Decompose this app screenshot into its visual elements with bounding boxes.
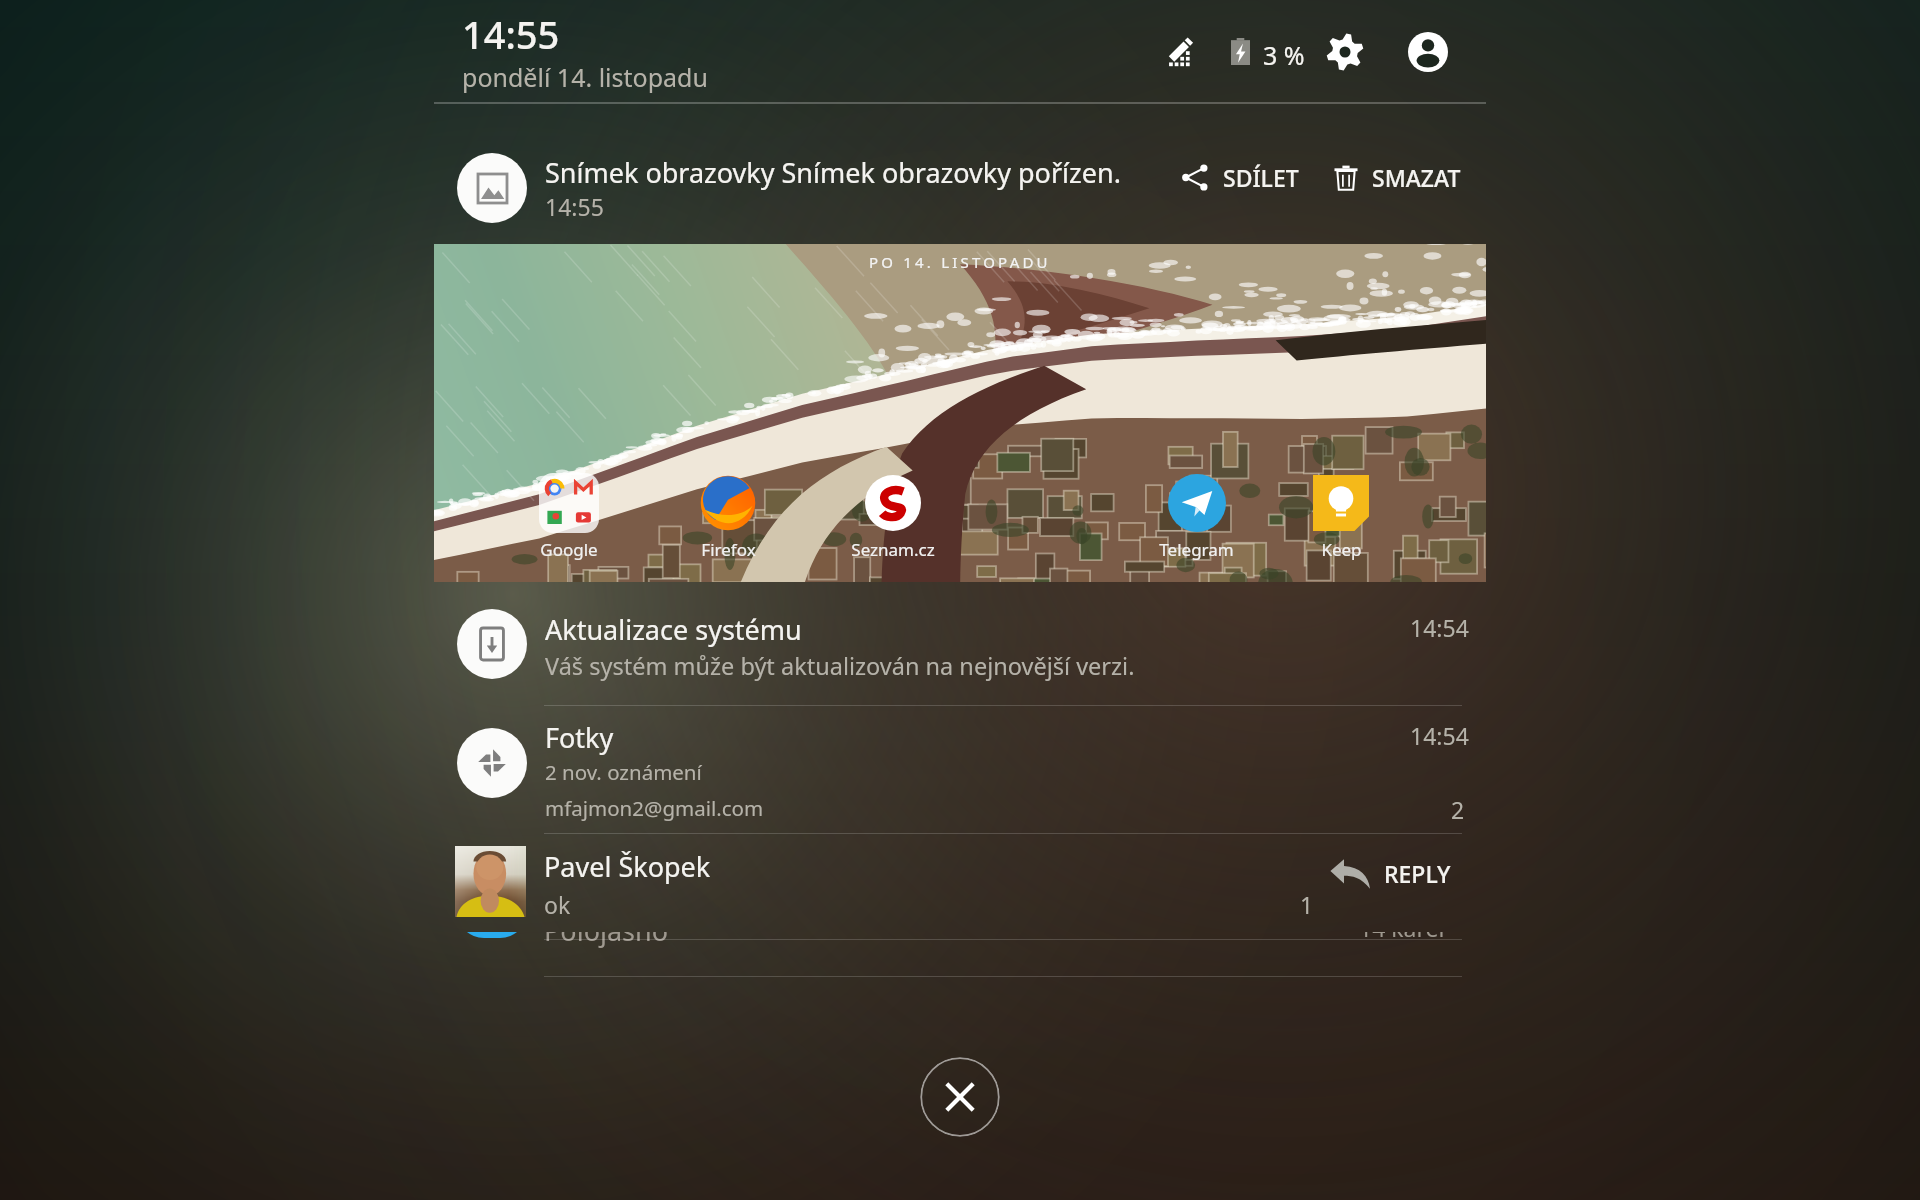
staticText: PO 14. LISTOPADU: [869, 252, 1051, 272]
staticText: Keep: [1321, 538, 1362, 561]
button[interactable]: User profile: [1407, 31, 1449, 73]
button[interactable]: REPLY: [1330, 848, 1451, 898]
button[interactable]: SMAZAT: [1334, 152, 1461, 202]
staticText: Telegram: [1159, 538, 1234, 561]
button[interactable]: Google: [538, 472, 600, 561]
staticText: Pavel Škopek: [544, 848, 711, 885]
staticText: 14:55: [462, 8, 560, 60]
button[interactable]: Pavel Škopek: [434, 838, 1486, 934]
staticText: Aktualizace systému: [545, 611, 802, 648]
button[interactable]: SDÍLET: [1182, 152, 1299, 202]
button[interactable]: Polojasno: [434, 932, 1486, 986]
staticText: 14 karel: [1359, 932, 1445, 943]
staticText: Google: [540, 538, 598, 561]
staticText: 3 %: [1263, 38, 1305, 72]
button[interactable]: Close notifications: [920, 1057, 1000, 1137]
button[interactable]: Firefox: [697, 472, 759, 561]
staticText: 14:55: [545, 191, 604, 222]
staticText: Firefox: [701, 538, 756, 561]
staticText: 1: [1300, 889, 1314, 920]
staticText: 14:54: [1410, 720, 1469, 751]
button[interactable]: Fotky: [434, 706, 1486, 834]
button[interactable]: Settings: [1325, 32, 1365, 72]
staticText: Fotky: [545, 719, 614, 756]
button[interactable]: Seznam.cz: [851, 472, 935, 561]
staticText: Váš systém může být aktualizován na nejn…: [545, 650, 1135, 682]
staticText: Seznam.cz: [851, 538, 935, 561]
staticText: 2 nov. oznámení: [545, 758, 702, 786]
button[interactable]: Telegram: [1159, 472, 1234, 561]
staticText: REPLY: [1384, 858, 1451, 889]
staticText: ok: [544, 889, 571, 920]
staticText: Polojasno: [544, 932, 669, 949]
staticText: 2: [1451, 794, 1465, 825]
staticText: 14:54: [1410, 612, 1469, 643]
staticText: mfajmon2@gmail.com: [545, 794, 764, 822]
staticText: pondělí 14. listopadu: [462, 60, 708, 94]
button[interactable]: Edit quick settings: [1163, 33, 1201, 71]
staticText: SDÍLET: [1223, 162, 1299, 193]
button[interactable]: Aktualizace systému: [434, 598, 1486, 706]
staticText: SMAZAT: [1372, 162, 1461, 193]
staticText: Snímek obrazovky Snímek obrazovky poříze…: [545, 154, 1121, 191]
button[interactable]: Keep: [1310, 472, 1372, 561]
